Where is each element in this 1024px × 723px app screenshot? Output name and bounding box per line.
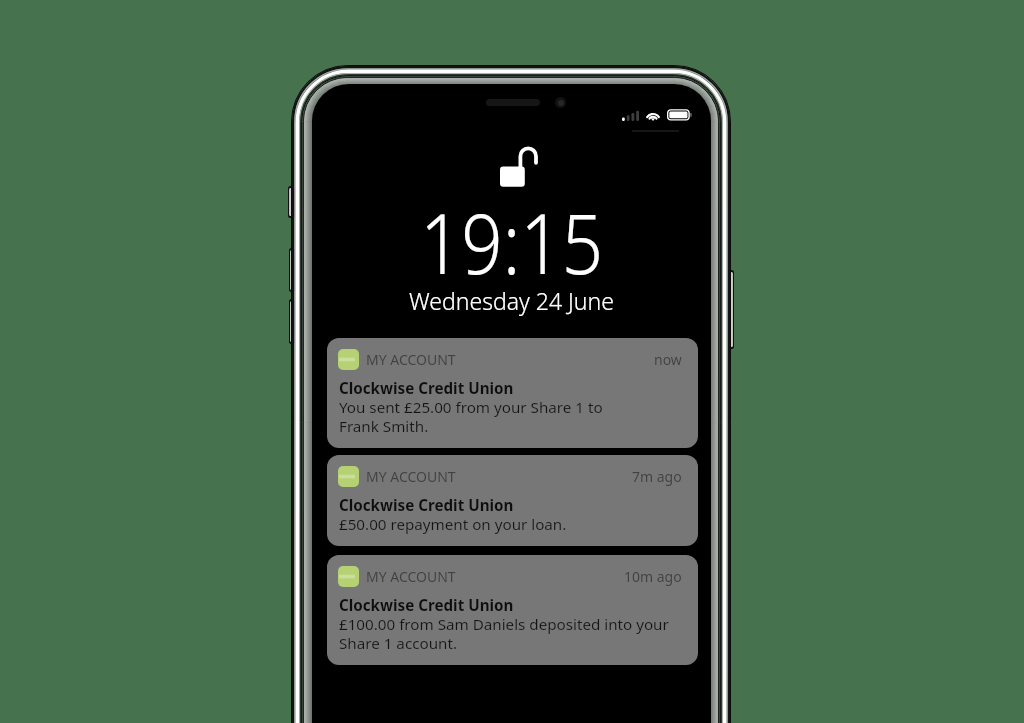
staticText: MY ACCOUNT [366,467,456,486]
button[interactable]: MY ACCOUNT [327,338,698,448]
button[interactable]: MY ACCOUNT [327,455,698,546]
staticText: 19:15 [337,185,685,298]
staticText: 10m ago [624,567,682,586]
staticText: 7m ago [632,467,682,486]
staticText: MY ACCOUNT [366,350,456,369]
staticText: Clockwise Credit Union You sent £25.00 f… [339,378,603,436]
other: Unlocked [500,147,542,191]
staticText: Clockwise Credit Union £100.00 from Sam … [339,595,669,653]
staticText: Wednesday 24 June [312,285,711,316]
button[interactable]: MY ACCOUNT [327,555,698,665]
staticText: Clockwise Credit Union £50.00 repayment … [339,495,567,534]
staticText: MY ACCOUNT [366,567,456,586]
staticText: now [654,350,682,369]
